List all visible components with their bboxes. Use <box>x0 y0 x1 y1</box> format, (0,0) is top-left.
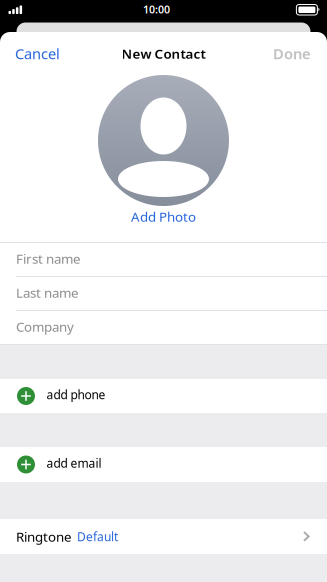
button[interactable]: add phone <box>0 379 327 413</box>
button[interactable]: Add Photo <box>98 75 229 206</box>
button[interactable]: Cancel <box>15 44 60 63</box>
staticText: Add Photo <box>131 208 196 225</box>
staticText: add phone <box>46 386 105 402</box>
staticText: Cancel <box>15 44 60 63</box>
button[interactable]: Ringtone <box>0 519 327 554</box>
button[interactable]: Company <box>0 311 327 344</box>
staticText: Default <box>77 528 118 544</box>
button[interactable]: add email <box>0 447 327 482</box>
button[interactable]: Done <box>273 44 311 63</box>
staticText: Ringtone <box>16 528 72 545</box>
staticText: First name <box>16 250 81 267</box>
staticText: Done <box>273 44 311 63</box>
staticText: New Contact <box>121 45 205 62</box>
button[interactable]: Last name <box>0 277 327 310</box>
button[interactable]: First name <box>0 243 327 276</box>
button[interactable]: Add Photo <box>131 208 196 225</box>
staticText: add email <box>46 455 101 471</box>
staticText: Last name <box>16 284 79 301</box>
staticText: 10:00 <box>143 2 170 16</box>
staticText: Company <box>16 318 74 335</box>
